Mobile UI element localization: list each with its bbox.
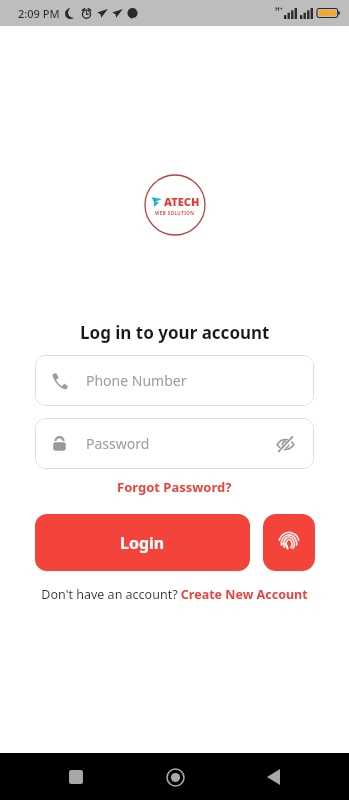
staticText: WEB SOLUTION <box>155 210 195 216</box>
staticText: ATECH <box>164 194 200 209</box>
staticText: Login <box>120 532 165 554</box>
button[interactable]: Login with fingerprint <box>263 514 315 571</box>
button[interactable]: Forgot Password? <box>113 475 236 499</box>
staticText: Phone Number <box>86 371 298 390</box>
staticText: H+ <box>275 5 284 13</box>
staticText: Forgot Password? <box>117 478 232 496</box>
button[interactable]: Home <box>152 754 198 800</box>
button[interactable]: Back <box>250 754 296 800</box>
staticText: Don't have an account? Create New Accoun… <box>41 586 308 603</box>
button[interactable]: Password <box>35 418 314 469</box>
button[interactable]: Phone Number <box>35 355 314 406</box>
button[interactable]: Don't have an account? Create New Accoun… <box>35 583 314 606</box>
staticText: Password <box>86 434 272 453</box>
button[interactable]: Login <box>35 514 250 571</box>
button[interactable]: Recent apps <box>53 754 99 800</box>
staticText: Log in to your account <box>80 321 270 344</box>
staticText: 2:09 PM <box>18 6 60 21</box>
button[interactable]: Show password <box>272 431 298 457</box>
